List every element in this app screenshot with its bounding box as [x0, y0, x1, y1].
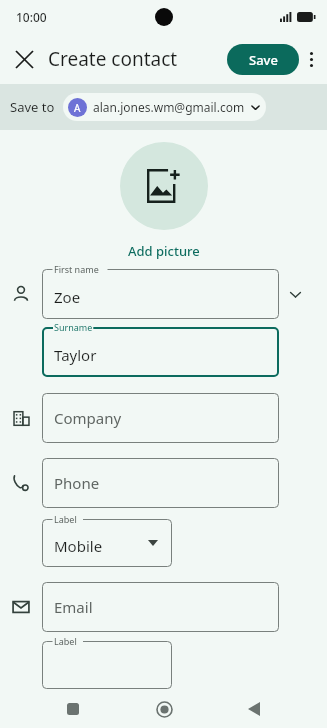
button[interactable]: First name	[42, 269, 279, 319]
staticText: A	[74, 101, 81, 115]
button[interactable]: Label	[42, 519, 172, 567]
button[interactable]: Company	[42, 393, 279, 443]
staticText: Create contact	[48, 46, 178, 72]
button[interactable]: A	[63, 93, 266, 121]
staticText: Taylor	[54, 345, 97, 365]
staticText: Label	[54, 635, 77, 647]
button[interactable]: Label	[42, 641, 172, 689]
staticText: alan.jones.wm@gmail.com	[93, 99, 245, 115]
staticText: Save to	[10, 98, 55, 116]
staticText: Save	[249, 51, 278, 69]
button[interactable]: Expand name fields	[279, 278, 312, 311]
button[interactable]: Save	[227, 44, 299, 75]
button[interactable]: Surname	[42, 327, 279, 377]
staticText: Mobile	[54, 536, 103, 556]
button[interactable]: Home	[147, 692, 181, 726]
button[interactable]: Close	[6, 41, 42, 77]
button[interactable]: Email	[42, 582, 279, 632]
button[interactable]: Recent apps	[56, 692, 90, 726]
staticText: First name	[54, 263, 99, 275]
button[interactable]: Add picture	[128, 242, 200, 260]
button[interactable]: More options	[296, 44, 326, 74]
button[interactable]: Phone	[42, 458, 279, 508]
staticText: Company	[54, 408, 122, 428]
staticText: Zoe	[54, 287, 81, 307]
staticText: Email	[54, 597, 93, 617]
button[interactable]: Add picture	[120, 142, 208, 230]
staticText: Phone	[54, 473, 100, 493]
staticText: Label	[54, 513, 77, 525]
button[interactable]: Back	[237, 692, 271, 726]
staticText: 10:00	[16, 9, 47, 25]
staticText: Surname	[54, 321, 93, 333]
